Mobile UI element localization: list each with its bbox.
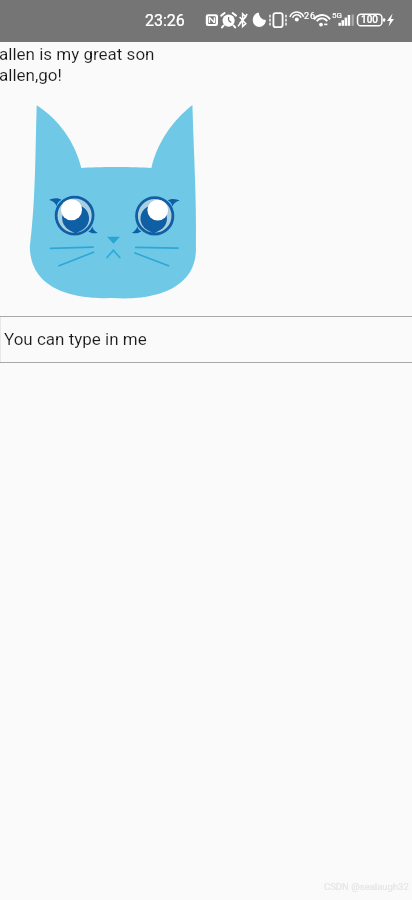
staticText: You can type in me <box>4 329 147 349</box>
button[interactable]: You can type in me <box>0 317 412 361</box>
staticText: 23:26 <box>145 11 185 30</box>
staticText: allen is my great son <box>0 44 155 64</box>
staticText: 5G <box>332 11 342 20</box>
staticText: 6 <box>310 11 316 22</box>
staticText: 100 <box>361 14 379 26</box>
staticText: 2 <box>304 11 310 22</box>
staticText: CSDN @sealaugh32 <box>324 881 409 892</box>
staticText: allen,go! <box>0 65 62 85</box>
